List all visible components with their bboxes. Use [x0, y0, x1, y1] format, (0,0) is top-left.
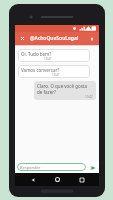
button[interactable]: Claro. O que você gosta de fazer? — [34, 81, 96, 100]
button[interactable]: Responder — [17, 163, 86, 171]
staticText: 10:42 — [85, 95, 93, 99]
button[interactable]: Recents — [75, 173, 89, 186]
button[interactable]: Oi. Tudo bem? — [18, 49, 90, 62]
staticText: Vamos conversar? — [21, 67, 60, 73]
staticText: @AchoQueSouLegal — [30, 35, 86, 42]
button[interactable]: Send — [88, 163, 97, 172]
button[interactable]: More options — [86, 33, 97, 44]
staticText: 10:41 — [52, 73, 60, 77]
staticText: Claro. O que você gosta de fazer? — [37, 83, 93, 95]
button[interactable]: Vamos conversar? — [18, 65, 90, 78]
staticText: Responder — [20, 165, 41, 170]
button[interactable]: Close — [17, 33, 28, 44]
button[interactable]: Back — [26, 173, 40, 186]
staticText: 10:41 — [44, 57, 52, 61]
staticText: 10:42 — [90, 27, 98, 31]
button[interactable]: Home — [50, 173, 64, 186]
staticText: Oi. Tudo bem? — [21, 51, 52, 57]
